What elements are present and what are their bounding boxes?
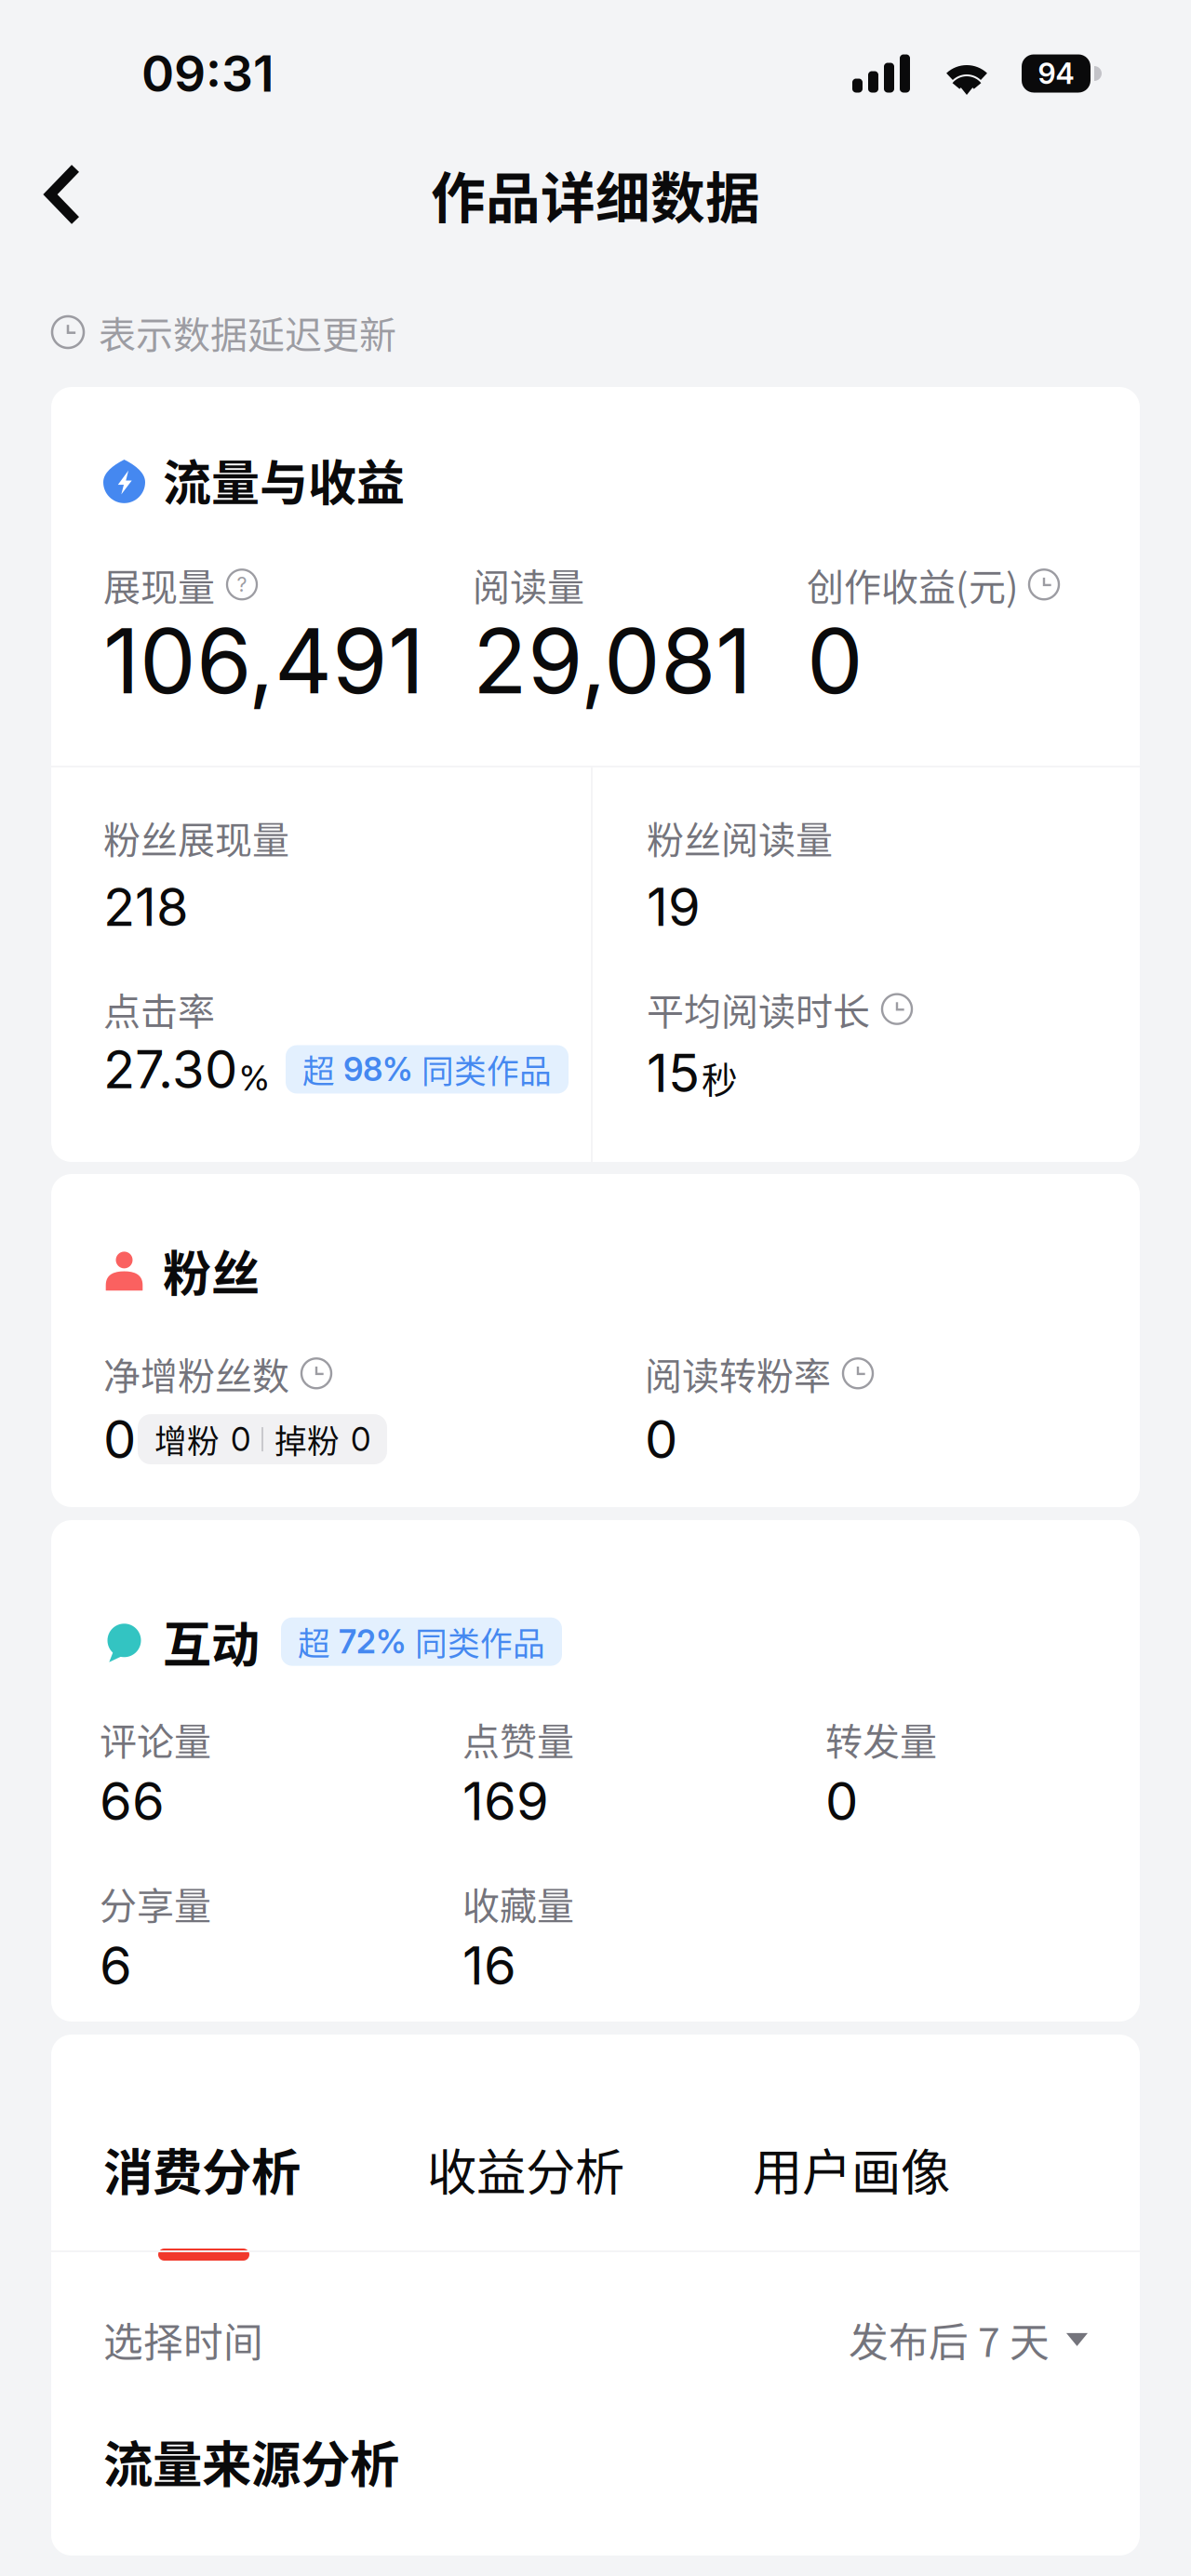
staticText: 表示数据延迟更新 <box>99 305 396 359</box>
button[interactable]: 返回 <box>0 147 104 242</box>
staticText: 评论量 <box>100 1712 211 1766</box>
button[interactable]: 用户画像 <box>738 2035 965 2220</box>
staticText: 同类作品 <box>415 1618 545 1665</box>
staticText: 0 <box>231 1420 250 1459</box>
staticText: 169 <box>462 1770 549 1833</box>
staticText: 平均阅读时长 <box>647 982 870 1036</box>
staticText: 互动 <box>163 1607 260 1677</box>
staticText: 展现量 <box>103 558 215 611</box>
staticText: 消费分析 <box>103 2133 301 2205</box>
staticText: 超 <box>302 1046 335 1093</box>
staticText: 阅读量 <box>473 558 584 611</box>
staticText: 94 <box>1038 56 1074 91</box>
staticText: 收益分析 <box>427 2133 624 2205</box>
staticText: 29,081 <box>473 607 752 715</box>
staticText: 106,491 <box>103 607 424 715</box>
staticText: 218 <box>103 875 189 938</box>
staticText: 超 <box>298 1618 330 1665</box>
staticText: 27.30 <box>103 1038 237 1101</box>
staticText: 掉粉 <box>274 1416 340 1463</box>
staticText: % <box>239 1057 270 1099</box>
staticText: 流量与收益 <box>163 445 405 515</box>
staticText: 点赞量 <box>462 1712 574 1766</box>
staticText: 0 <box>103 1408 136 1471</box>
staticText: 选择时间 <box>103 2311 263 2368</box>
staticText: 粉丝阅读量 <box>647 810 833 864</box>
staticText: 0 <box>807 607 863 715</box>
staticText: 0 <box>351 1420 370 1459</box>
staticText: 收藏量 <box>462 1876 574 1930</box>
staticText: 16 <box>462 1934 516 1997</box>
staticText: 发布后 7 天 <box>849 2311 1050 2368</box>
staticText: 分享量 <box>100 1876 211 1930</box>
staticText: 转发量 <box>825 1712 937 1766</box>
staticText: 秒 <box>702 1052 738 1104</box>
staticText: 创作收益(元) <box>807 558 1019 611</box>
staticText: 0 <box>645 1408 677 1471</box>
staticText: 流量来源分析 <box>103 2425 399 2497</box>
button[interactable]: 发布后 7 天 <box>849 2311 1088 2368</box>
staticText: 粉丝展现量 <box>103 810 289 864</box>
button[interactable]: 消费分析 <box>51 2035 315 2220</box>
staticText: 19 <box>647 875 701 938</box>
staticText: 点击率 <box>103 982 215 1036</box>
staticText: 72% <box>339 1622 407 1661</box>
staticText: 0 <box>825 1770 858 1833</box>
staticText: 同类作品 <box>422 1046 552 1093</box>
staticText: 66 <box>100 1770 165 1833</box>
staticText: 用户画像 <box>753 2133 950 2205</box>
staticText: 作品详细数据 <box>431 155 760 234</box>
staticText: 15 <box>647 1042 700 1105</box>
staticText: 增粉 <box>154 1416 220 1463</box>
staticText: 98% <box>343 1050 413 1089</box>
staticText: ? <box>237 573 247 597</box>
staticText: 粉丝 <box>163 1235 260 1305</box>
staticText: 09:31 <box>141 43 274 103</box>
staticText: 6 <box>100 1934 132 1997</box>
button[interactable]: 收益分析 <box>412 2035 639 2220</box>
staticText: 净增粉丝数 <box>103 1346 289 1400</box>
staticText: 阅读转粉率 <box>645 1346 831 1400</box>
